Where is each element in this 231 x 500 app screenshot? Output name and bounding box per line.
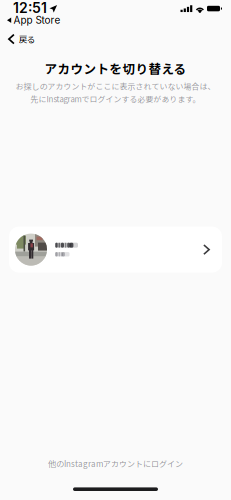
staticText: アカウントを切り替える	[44, 59, 186, 77]
staticText: 12:51	[13, 0, 47, 16]
button[interactable]: 戻る	[0, 30, 43, 48]
staticText: 戻る	[19, 33, 35, 45]
staticText: お探しのアカウントがここに表示されていない場合は、	[15, 80, 215, 92]
button[interactable]	[9, 227, 222, 273]
staticText: 先にInstagramでログインする必要があります。	[30, 93, 200, 105]
staticText: 他のInstagramアカウントにログイン	[48, 458, 183, 469]
staticText: App Store	[13, 14, 60, 26]
button[interactable]: 他のInstagramアカウントにログイン	[38, 453, 193, 474]
